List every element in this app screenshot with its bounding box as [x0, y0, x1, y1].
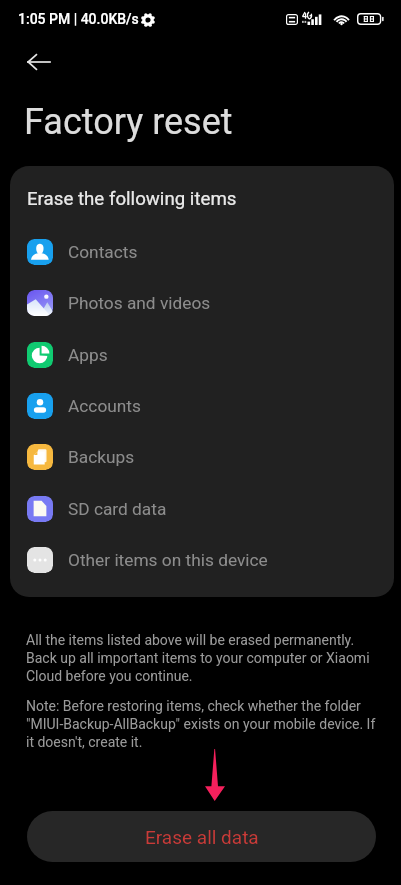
- staticText: Contacts: [68, 242, 138, 262]
- staticText: Accounts: [68, 396, 141, 416]
- button[interactable]: Other items on this device: [10, 534, 394, 585]
- button[interactable]: Backups: [10, 431, 394, 482]
- staticText: Factory reset: [24, 101, 233, 143]
- staticText: Other items on this device: [68, 550, 268, 570]
- button[interactable]: Accounts: [10, 380, 394, 431]
- staticText: 1:05 PM | 40.0KB/s: [18, 11, 139, 27]
- button[interactable]: SD card data: [10, 483, 394, 534]
- button[interactable]: Back: [14, 38, 64, 86]
- button[interactable]: Photos and videos: [10, 277, 394, 328]
- staticText: Erase the following items: [27, 188, 237, 210]
- button[interactable]: Erase all data: [27, 811, 376, 862]
- staticText: Photos and videos: [68, 293, 211, 313]
- staticText: Apps: [68, 345, 108, 365]
- staticText: All the items listed above will be erase…: [26, 631, 379, 685]
- staticText: Note: Before restoring items, check whet…: [26, 697, 379, 751]
- staticText: SD card data: [68, 499, 167, 519]
- staticText: Backups: [68, 447, 135, 467]
- staticText: Erase all data: [145, 826, 259, 848]
- button[interactable]: Contacts: [10, 226, 394, 277]
- button[interactable]: Apps: [10, 329, 394, 380]
